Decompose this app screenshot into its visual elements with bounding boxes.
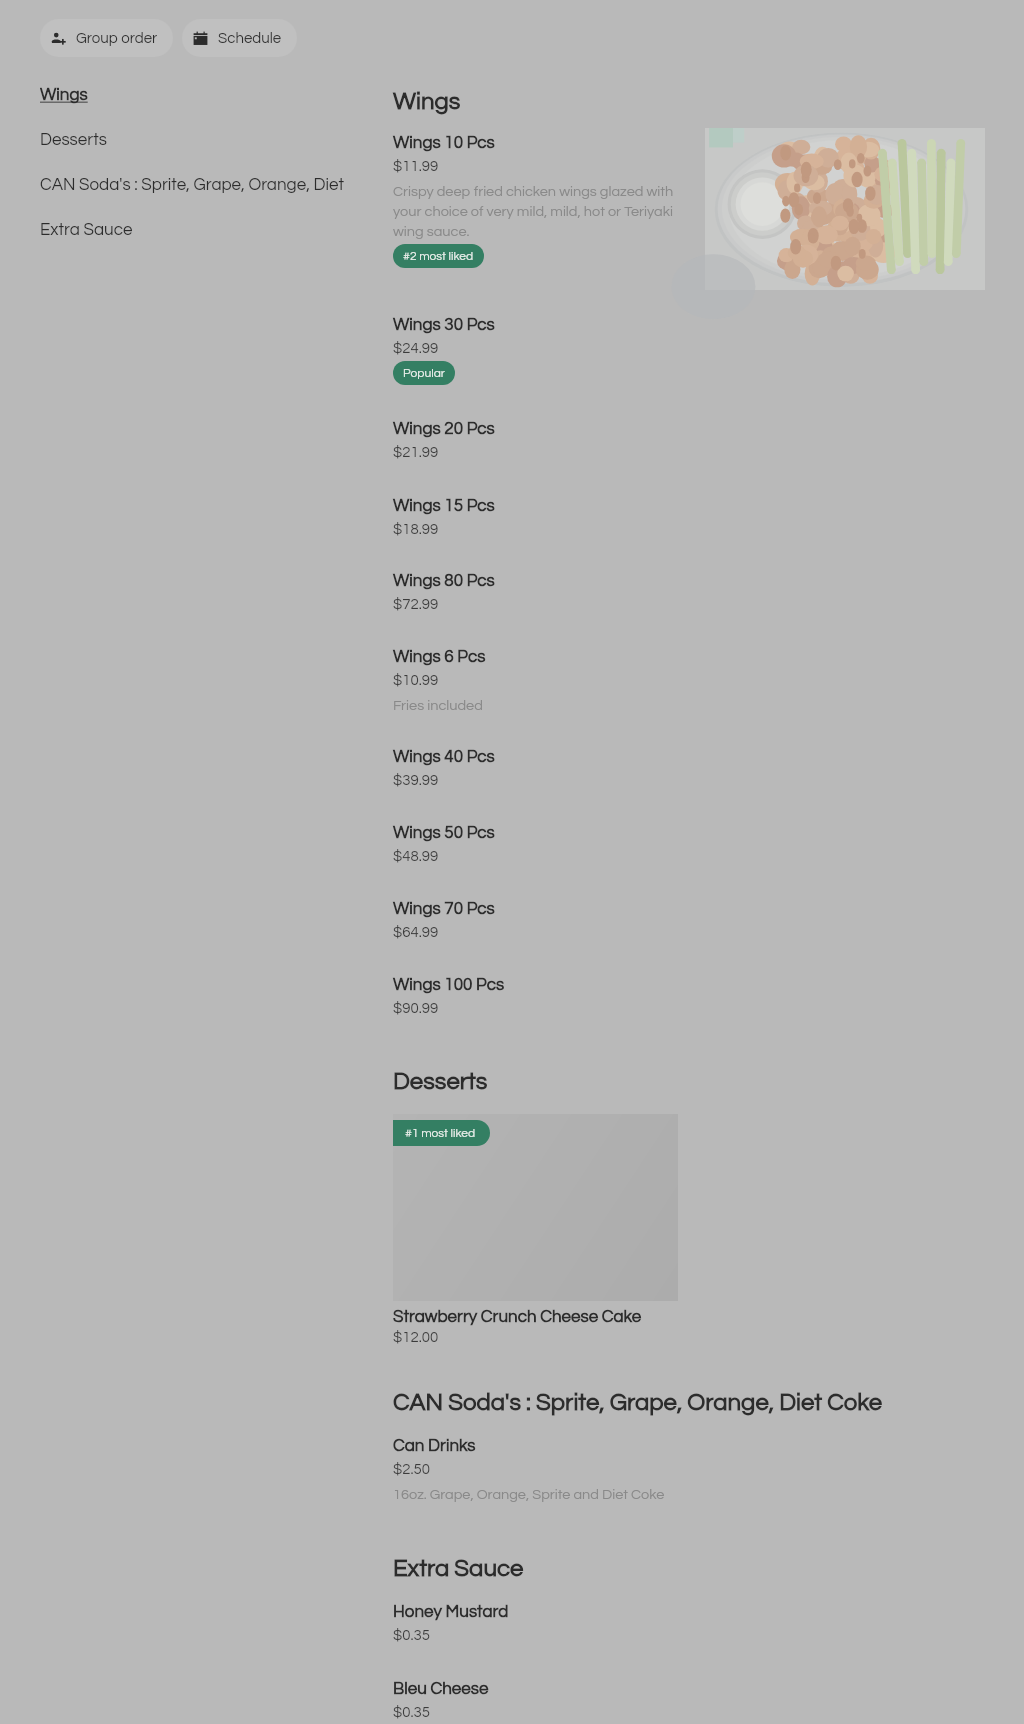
staticText: $39.99 <box>393 773 439 788</box>
staticText: Popular <box>403 367 445 379</box>
staticText: $64.99 <box>393 925 439 940</box>
staticText: CAN Soda's : Sprite, Grape, Orange, Diet… <box>40 176 346 194</box>
staticText: Crispy deep fried chicken wings glazed w… <box>393 184 678 239</box>
button[interactable]: Schedule <box>182 19 297 57</box>
button[interactable]: Wings 30 Pcs <box>393 316 993 420</box>
staticText: $10.99 <box>393 673 439 688</box>
staticText: Wings 30 Pcs <box>393 316 495 334</box>
button[interactable]: Wings 6 Pcs <box>393 648 993 748</box>
button[interactable]: Bleu Cheese <box>393 1680 993 1724</box>
staticText: Wings 40 Pcs <box>393 748 495 766</box>
staticText: $72.99 <box>393 597 439 612</box>
button[interactable]: Wings 15 Pcs <box>393 497 993 572</box>
staticText: $0.35 <box>393 1628 431 1643</box>
staticText: $24.99 <box>393 341 439 356</box>
button[interactable]: CAN Soda's : Sprite, Grape, Orange, Diet… <box>40 176 346 221</box>
staticText: $18.99 <box>393 522 439 537</box>
staticText: Wings 50 Pcs <box>393 824 495 842</box>
button[interactable]: Wings 20 Pcs <box>393 420 993 497</box>
staticText: Bleu Cheese <box>393 1680 489 1698</box>
other: Group order <box>51 31 66 46</box>
other: Schedule <box>193 31 208 46</box>
button[interactable]: Extra Sauce <box>40 221 346 266</box>
staticText: Wings 15 Pcs <box>393 497 495 515</box>
staticText: 16oz. Grape, Orange, Sprite and Diet Cok… <box>393 1487 678 1502</box>
staticText: $90.99 <box>393 1001 439 1016</box>
button[interactable]: Wings 100 Pcs <box>393 976 993 1051</box>
staticText: Fries included <box>393 698 678 713</box>
button[interactable]: #1 most liked <box>393 1114 678 1345</box>
button[interactable]: Wings 70 Pcs <box>393 900 993 976</box>
staticText: Extra Sauce <box>40 221 133 239</box>
staticText: Desserts <box>393 1069 488 1094</box>
button[interactable]: Desserts <box>40 131 346 176</box>
staticText: $11.99 <box>393 159 439 174</box>
staticText: Wings 80 Pcs <box>393 572 495 590</box>
staticText: Wings <box>393 89 461 114</box>
staticText: Wings 10 Pcs <box>393 134 495 152</box>
staticText: #2 most liked <box>403 250 474 262</box>
staticText: Wings 100 Pcs <box>393 976 505 994</box>
staticText: Desserts <box>40 131 107 149</box>
button[interactable]: Wings 50 Pcs <box>393 824 993 900</box>
button[interactable]: Can Drinks <box>393 1437 993 1538</box>
staticText: $21.99 <box>393 445 439 460</box>
staticText: $48.99 <box>393 849 439 864</box>
button[interactable]: Honey Mustard <box>393 1603 993 1680</box>
button[interactable]: Wings 80 Pcs <box>393 572 993 648</box>
staticText: Honey Mustard <box>393 1603 509 1621</box>
staticText: Schedule <box>218 31 282 46</box>
staticText: CAN Soda's : Sprite, Grape, Orange, Diet… <box>393 1390 883 1415</box>
staticText: Strawberry Crunch Cheese Cake <box>393 1308 642 1326</box>
staticText: Can Drinks <box>393 1437 476 1455</box>
staticText: $2.50 <box>393 1462 431 1477</box>
staticText: Wings 20 Pcs <box>393 420 495 438</box>
button[interactable]: Wings 40 Pcs <box>393 748 993 824</box>
button[interactable]: Wings <box>40 86 346 131</box>
button[interactable]: Wings 10 Pcs <box>393 134 993 316</box>
staticText: $0.35 <box>393 1705 431 1720</box>
staticText: $12.00 <box>393 1330 439 1345</box>
staticText: Group order <box>76 31 158 46</box>
staticText: Wings <box>40 86 88 104</box>
staticText: Wings 70 Pcs <box>393 900 495 918</box>
staticText: #1 most liked <box>405 1127 476 1139</box>
button[interactable]: Group order <box>40 19 173 57</box>
staticText: Wings 6 Pcs <box>393 648 486 666</box>
staticText: Extra Sauce <box>393 1556 524 1581</box>
